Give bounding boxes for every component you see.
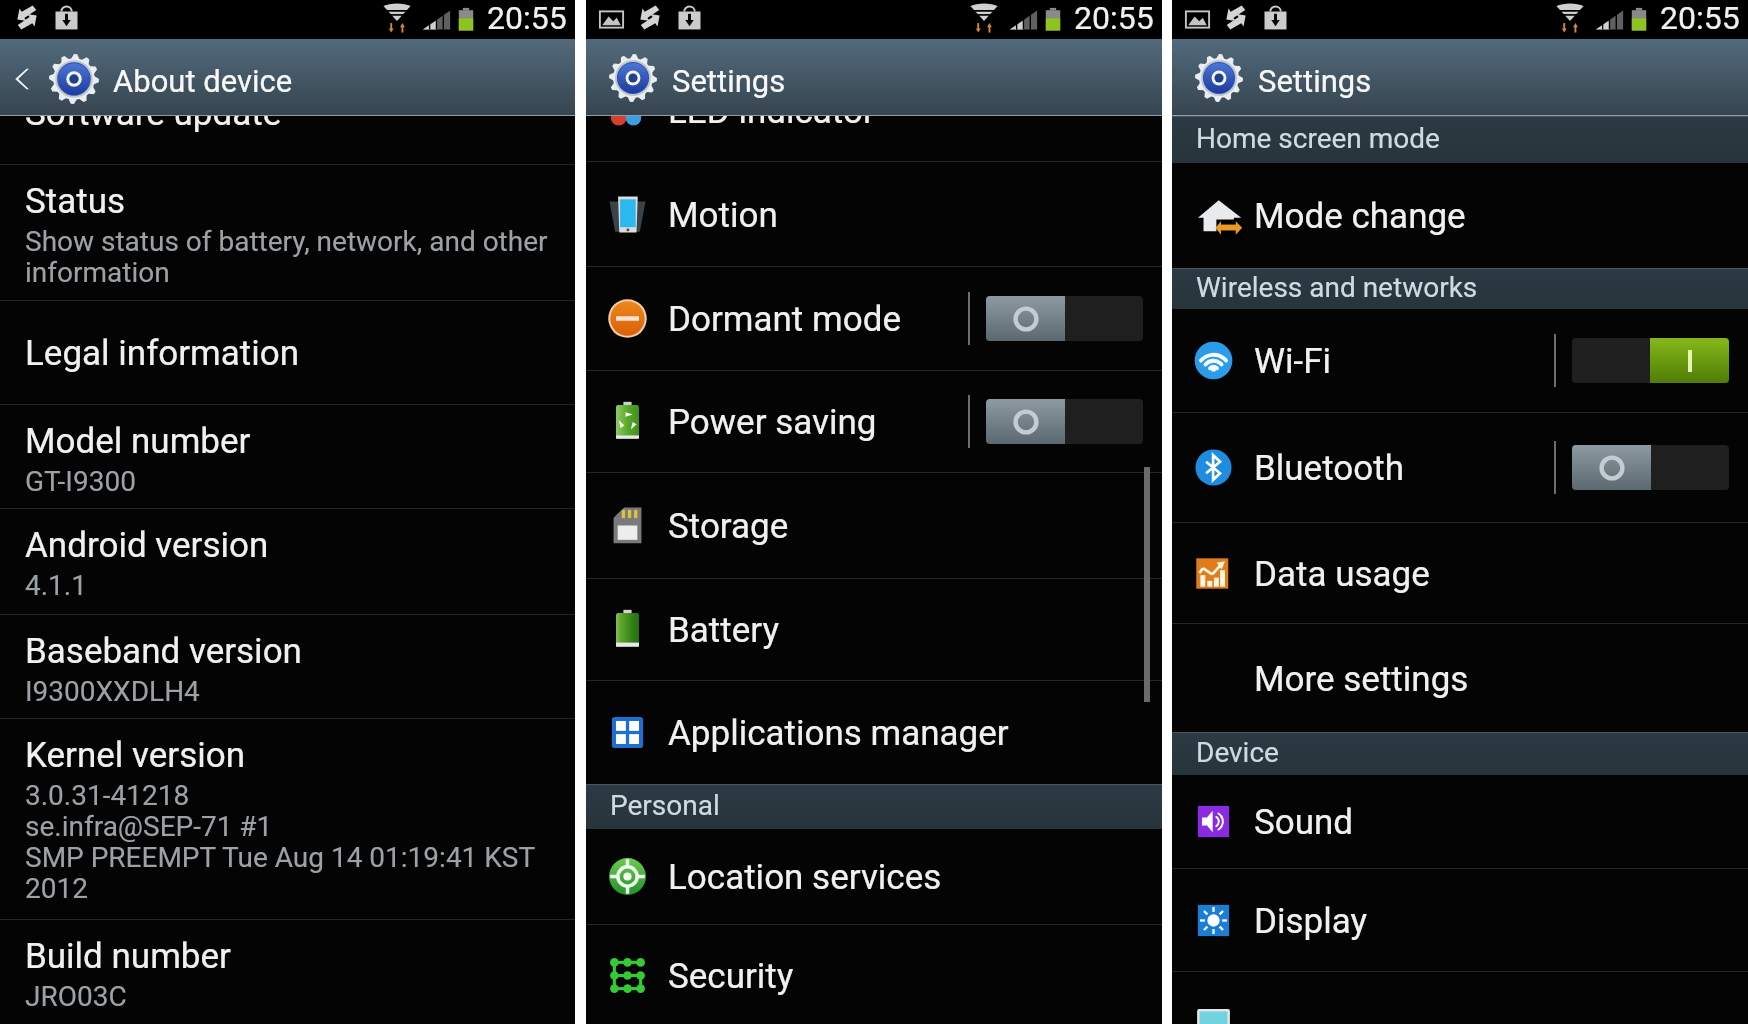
staticText: 20:55: [1660, 0, 1740, 37]
staticText: Personal: [610, 789, 720, 822]
staticText: JRO03C: [25, 980, 127, 1013]
button[interactable]: Model number: [0, 405, 575, 508]
button[interactable]: LED indicator: [586, 77, 1162, 161]
staticText: Baseband version: [25, 631, 302, 672]
button[interactable]: Motion: [586, 162, 1162, 266]
staticText: 20:55: [487, 0, 567, 37]
button[interactable]: Battery: [586, 579, 1162, 680]
button[interactable]: Toggle: [986, 296, 1143, 341]
staticText: Kernel version: [25, 735, 246, 776]
button[interactable]: Wi-Fi: [1172, 309, 1748, 412]
staticText: Display: [1254, 901, 1368, 942]
staticText: Wi-Fi: [1254, 341, 1332, 382]
staticText: Power saving: [668, 402, 877, 443]
button[interactable]: Bluetooth: [1172, 413, 1748, 522]
staticText: Home screen mode: [1196, 122, 1440, 155]
button[interactable]: Mode change: [1172, 163, 1748, 268]
staticText: 4.1.1: [25, 569, 87, 602]
staticText: Software update: [25, 93, 282, 134]
staticText: Show status of battery, network, and oth…: [25, 225, 548, 288]
button[interactable]: Sound: [1172, 775, 1748, 868]
button[interactable]: Baseband version: [0, 615, 575, 718]
staticText: 3.0.31-41218 se.infra@SEP-71 #1 SMP PREE…: [25, 779, 536, 904]
staticText: Data usage: [1254, 554, 1430, 595]
staticText: LED indicator: [668, 91, 875, 132]
staticText: Settings: [1258, 63, 1372, 99]
button[interactable]: Software update: [0, 78, 575, 164]
staticText: Storage: [668, 506, 789, 547]
button[interactable]: Storage: [586, 473, 1162, 578]
button[interactable]: Display: [1172, 869, 1748, 971]
button[interactable]: [1172, 972, 1748, 1024]
button[interactable]: Toggle: [986, 399, 1143, 444]
button[interactable]: Status: [0, 165, 575, 300]
staticText: Legal information: [25, 333, 300, 374]
button[interactable]: Location services: [586, 829, 1162, 924]
staticText: More settings: [1254, 659, 1469, 700]
staticText: Settings: [672, 63, 786, 99]
staticText: Motion: [668, 195, 778, 236]
button[interactable]: Android version: [0, 509, 575, 614]
button[interactable]: Toggle: [1572, 338, 1729, 383]
staticText: Mode change: [1254, 196, 1466, 237]
staticText: I9300XXDLH4: [25, 675, 200, 708]
staticText: Android version: [25, 525, 269, 566]
button[interactable]: Back: [5, 39, 40, 116]
staticText: Location services: [668, 857, 942, 898]
button[interactable]: Data usage: [1172, 523, 1748, 623]
staticText: Build number: [25, 936, 231, 977]
button[interactable]: Legal information: [0, 301, 575, 404]
staticText: Status: [25, 181, 126, 222]
staticText: 20:55: [1074, 0, 1154, 37]
staticText: Bluetooth: [1254, 448, 1404, 489]
button[interactable]: Power saving: [586, 371, 1162, 472]
button[interactable]: Kernel version: [0, 719, 575, 919]
button[interactable]: Security: [586, 925, 1162, 1024]
staticText: Device: [1196, 736, 1279, 769]
staticText: GT-I9300: [25, 465, 136, 498]
staticText: Sound: [1254, 802, 1354, 843]
button[interactable]: Toggle: [1572, 445, 1729, 490]
button[interactable]: Build number: [0, 920, 575, 1024]
staticText: About device: [113, 63, 293, 99]
button[interactable]: Dormant mode: [586, 267, 1162, 370]
staticText: Wireless and networks: [1196, 271, 1478, 304]
staticText: Battery: [668, 610, 780, 651]
button[interactable]: More settings: [1172, 624, 1748, 732]
staticText: Applications manager: [668, 713, 1009, 754]
staticText: Security: [668, 956, 794, 997]
button[interactable]: Applications manager: [586, 681, 1162, 784]
staticText: Model number: [25, 421, 251, 462]
staticText: Dormant mode: [668, 299, 901, 340]
